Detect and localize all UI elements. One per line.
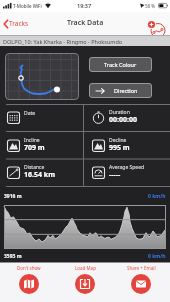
staticText: Share + Email [127,265,156,271]
button[interactable]: Distance [0,159,83,186]
button[interactable]: Decline [85,132,168,159]
button[interactable]: Duration [85,104,168,131]
staticText: 709 m [24,143,45,153]
staticText: Don't show [17,265,41,271]
button[interactable]: Direction [89,83,152,98]
staticText: 19:37 [77,2,92,9]
staticText: 00:00:00 [109,115,137,125]
button[interactable]: Incline [0,132,83,159]
button[interactable]: Share + Email [114,265,168,294]
button[interactable] [146,21,168,39]
staticText: ----- [109,170,121,180]
staticText: Duration [109,109,130,116]
button[interactable]: Date [0,104,83,131]
button[interactable]: Track Colour [89,57,152,72]
staticText: Track Data [67,18,104,28]
staticText: Distance [24,164,45,171]
staticText: Decline [109,137,127,144]
staticText: 995 m [109,143,130,153]
staticText: 3916 m [4,193,22,200]
button[interactable]: Average Speed [85,159,168,186]
staticText: Track Colour [104,61,137,68]
staticText: 3593 m [4,253,22,260]
staticText: 0 km/h [148,193,166,200]
staticText: 16.54 km [24,170,55,180]
staticText: Tracks [9,19,29,28]
staticText: Direction [114,87,138,94]
button[interactable]: Tracks [3,12,29,35]
staticText: 58 % [145,3,156,9]
staticText: Incline [24,137,40,144]
button[interactable] [5,53,79,100]
staticText: T-Mobile WiFi [13,3,42,9]
button[interactable]: Don't show [2,265,56,294]
button[interactable]: Load Map [58,265,112,294]
staticText: 0 km/h [148,253,166,260]
staticText: Average Speed [109,164,145,171]
staticText: DOLPO_10: Yak Kharka - Ringmo - Phoksumd… [3,38,123,45]
staticText: Date [24,110,36,117]
staticText: Load Map [75,265,96,271]
